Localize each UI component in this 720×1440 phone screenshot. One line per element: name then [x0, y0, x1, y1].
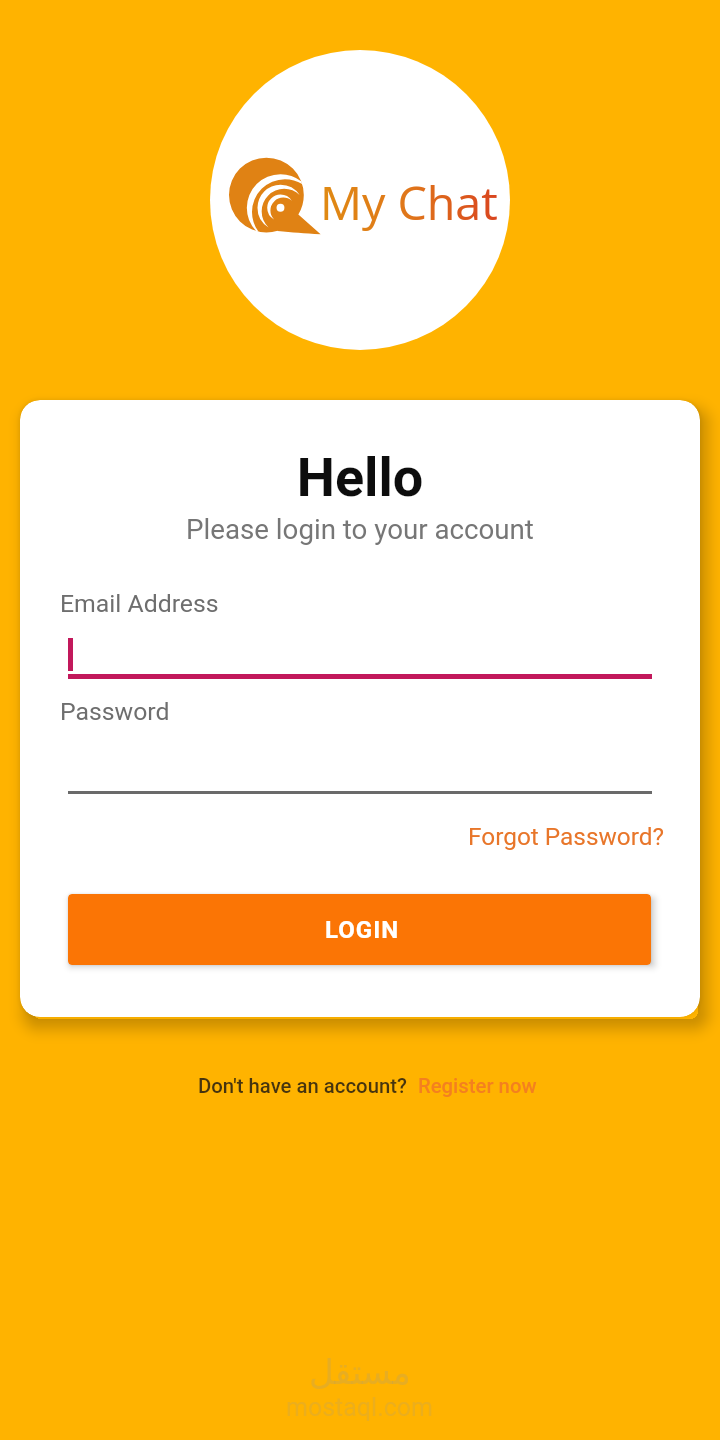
button[interactable]: LOGIN [68, 894, 651, 965]
staticText: Please login to your account [20, 513, 700, 545]
staticText: Password [60, 697, 170, 726]
other: My Chat logo [229, 155, 317, 243]
staticText: My Chat [320, 170, 498, 233]
button[interactable]: Forgot Password? [458, 816, 675, 857]
staticText: Don't have an account? [198, 1074, 407, 1098]
button[interactable]: Email Address input [60, 628, 660, 679]
staticText: Email Address [60, 589, 219, 618]
staticText: mostaql.com [286, 1393, 434, 1422]
staticText: Forgot Password? [468, 822, 665, 851]
button[interactable]: Register now [418, 1074, 537, 1098]
button[interactable]: Password input [60, 740, 660, 794]
staticText: LOGIN [325, 916, 400, 944]
staticText: مستقل [309, 1352, 411, 1392]
staticText: Hello [20, 446, 700, 509]
